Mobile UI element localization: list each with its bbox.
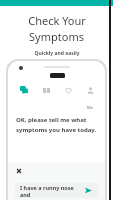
staticText: Me (87, 105, 93, 110)
staticText: symptoms you have today. (16, 126, 97, 134)
button[interactable]: I have a runny nose and (15, 183, 98, 198)
button[interactable]: Library (35, 82, 57, 98)
button[interactable]: Chat (12, 82, 35, 98)
button[interactable]: Profile (79, 82, 101, 98)
staticText: OK, please tell me what (16, 116, 87, 124)
staticText: Check Your (28, 13, 86, 28)
staticText: I have a runny nose and (20, 184, 84, 198)
button[interactable]: Close (15, 167, 23, 175)
button[interactable]: Health (57, 82, 79, 98)
staticText: Symptoms (29, 29, 84, 44)
staticText: Quickly and easily (34, 50, 80, 57)
button[interactable]: Send (84, 186, 93, 195)
